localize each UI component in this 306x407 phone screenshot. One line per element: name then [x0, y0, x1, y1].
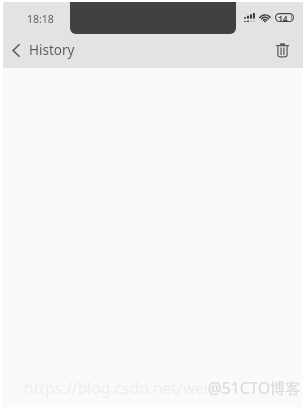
staticText: 14 — [278, 13, 288, 22]
staticText: History — [29, 41, 75, 59]
button[interactable]: History — [3, 35, 83, 65]
staticText: https://blog.csdn.net/wei@51CTO博客 — [24, 377, 302, 398]
staticText: 18:18 — [27, 12, 54, 26]
button[interactable]: Delete history — [267, 35, 297, 65]
